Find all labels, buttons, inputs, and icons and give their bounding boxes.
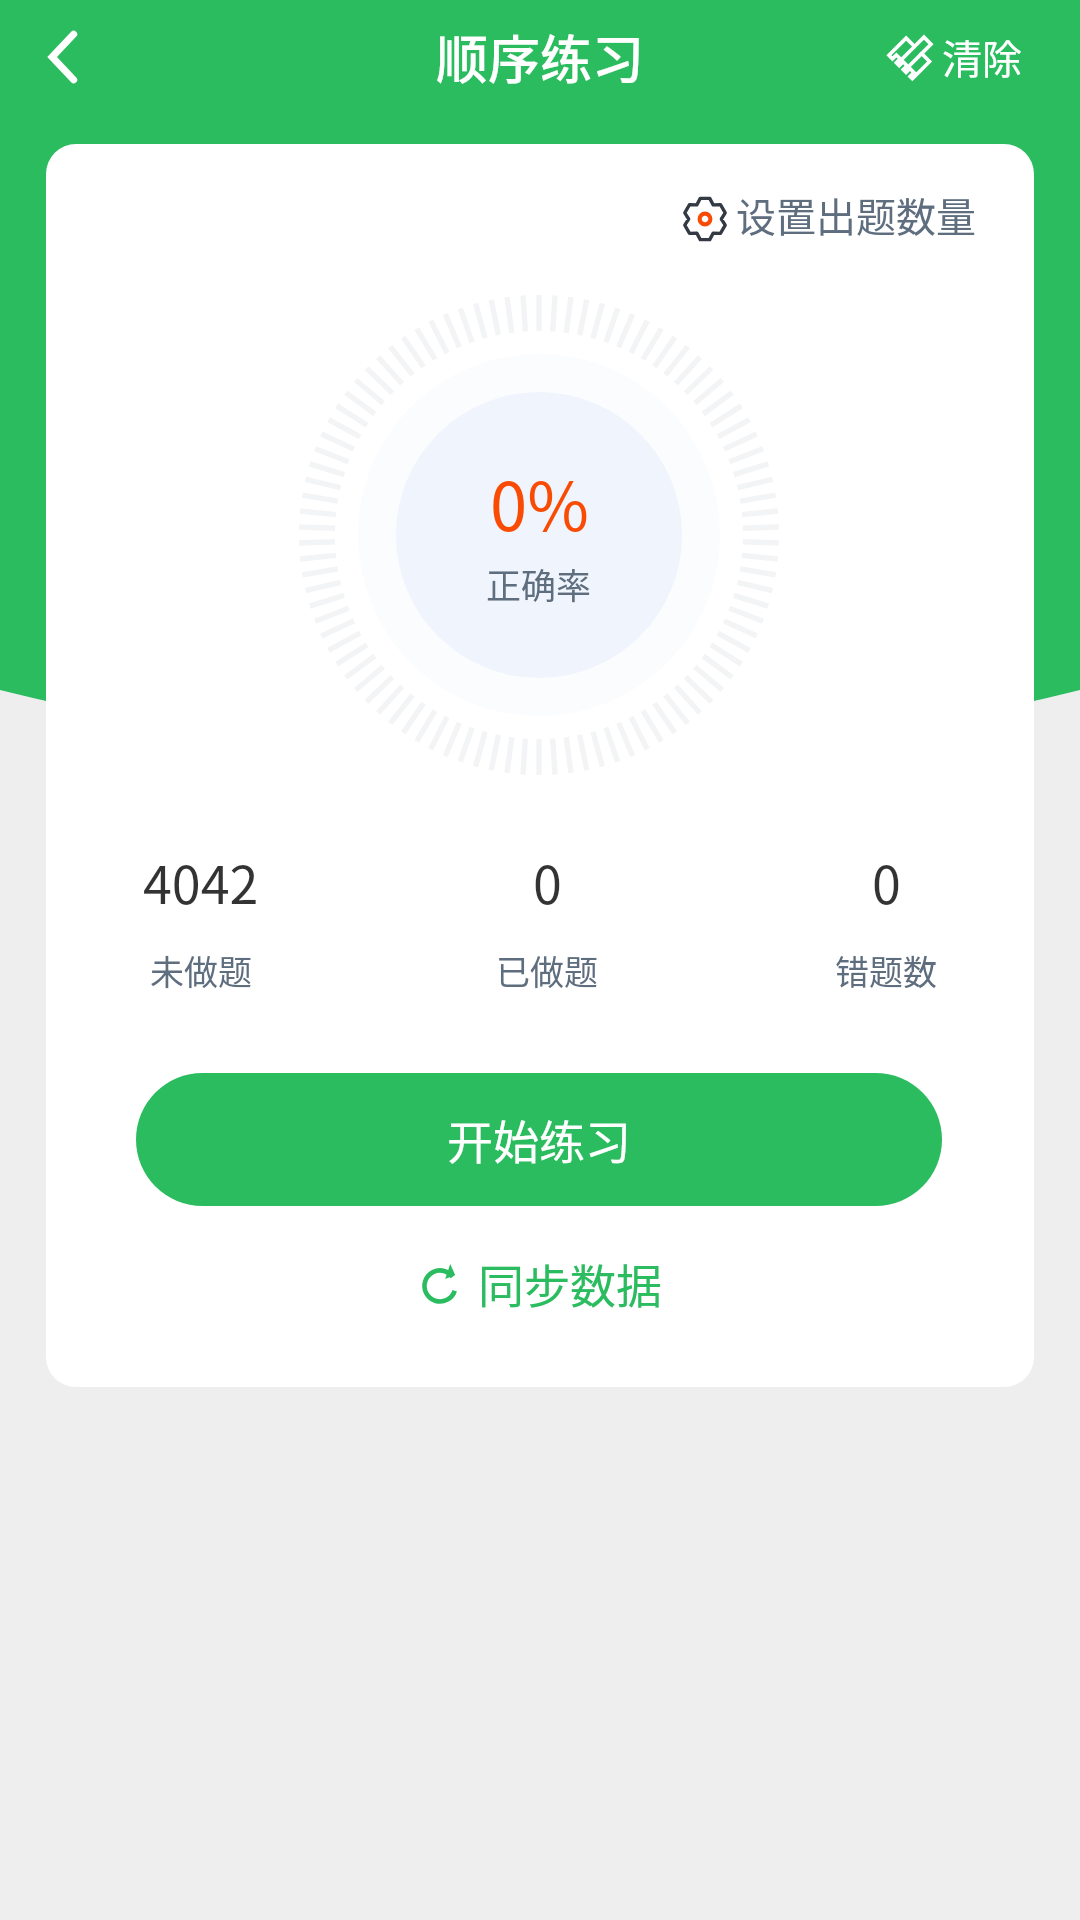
staticText: 开始练习 xyxy=(447,1106,631,1173)
staticText: 0% xyxy=(490,453,589,550)
button[interactable]: 同步数据 xyxy=(394,1236,686,1331)
staticText: 同步数据 xyxy=(478,1250,662,1317)
staticText: 4042 xyxy=(143,844,259,919)
button[interactable]: Back xyxy=(0,0,114,114)
staticText: 0 xyxy=(872,844,901,919)
staticText: 未做题 xyxy=(150,946,252,995)
button[interactable]: 0 xyxy=(496,844,598,995)
staticText: 正确率 xyxy=(486,558,592,609)
button[interactable]: 开始练习 xyxy=(136,1073,942,1206)
staticText: 设置出题数量 xyxy=(736,186,976,244)
button[interactable]: 设置出题数量 xyxy=(662,172,992,258)
button[interactable]: 0 xyxy=(835,844,937,995)
staticText: 清除 xyxy=(942,28,1022,86)
button[interactable]: 清除 xyxy=(864,12,1080,102)
staticText: 已做题 xyxy=(496,946,598,995)
staticText: 错题数 xyxy=(835,946,937,995)
staticText: 顺序练习 xyxy=(436,19,645,94)
button[interactable]: 4042 xyxy=(143,844,259,995)
staticText: 0 xyxy=(533,844,562,919)
